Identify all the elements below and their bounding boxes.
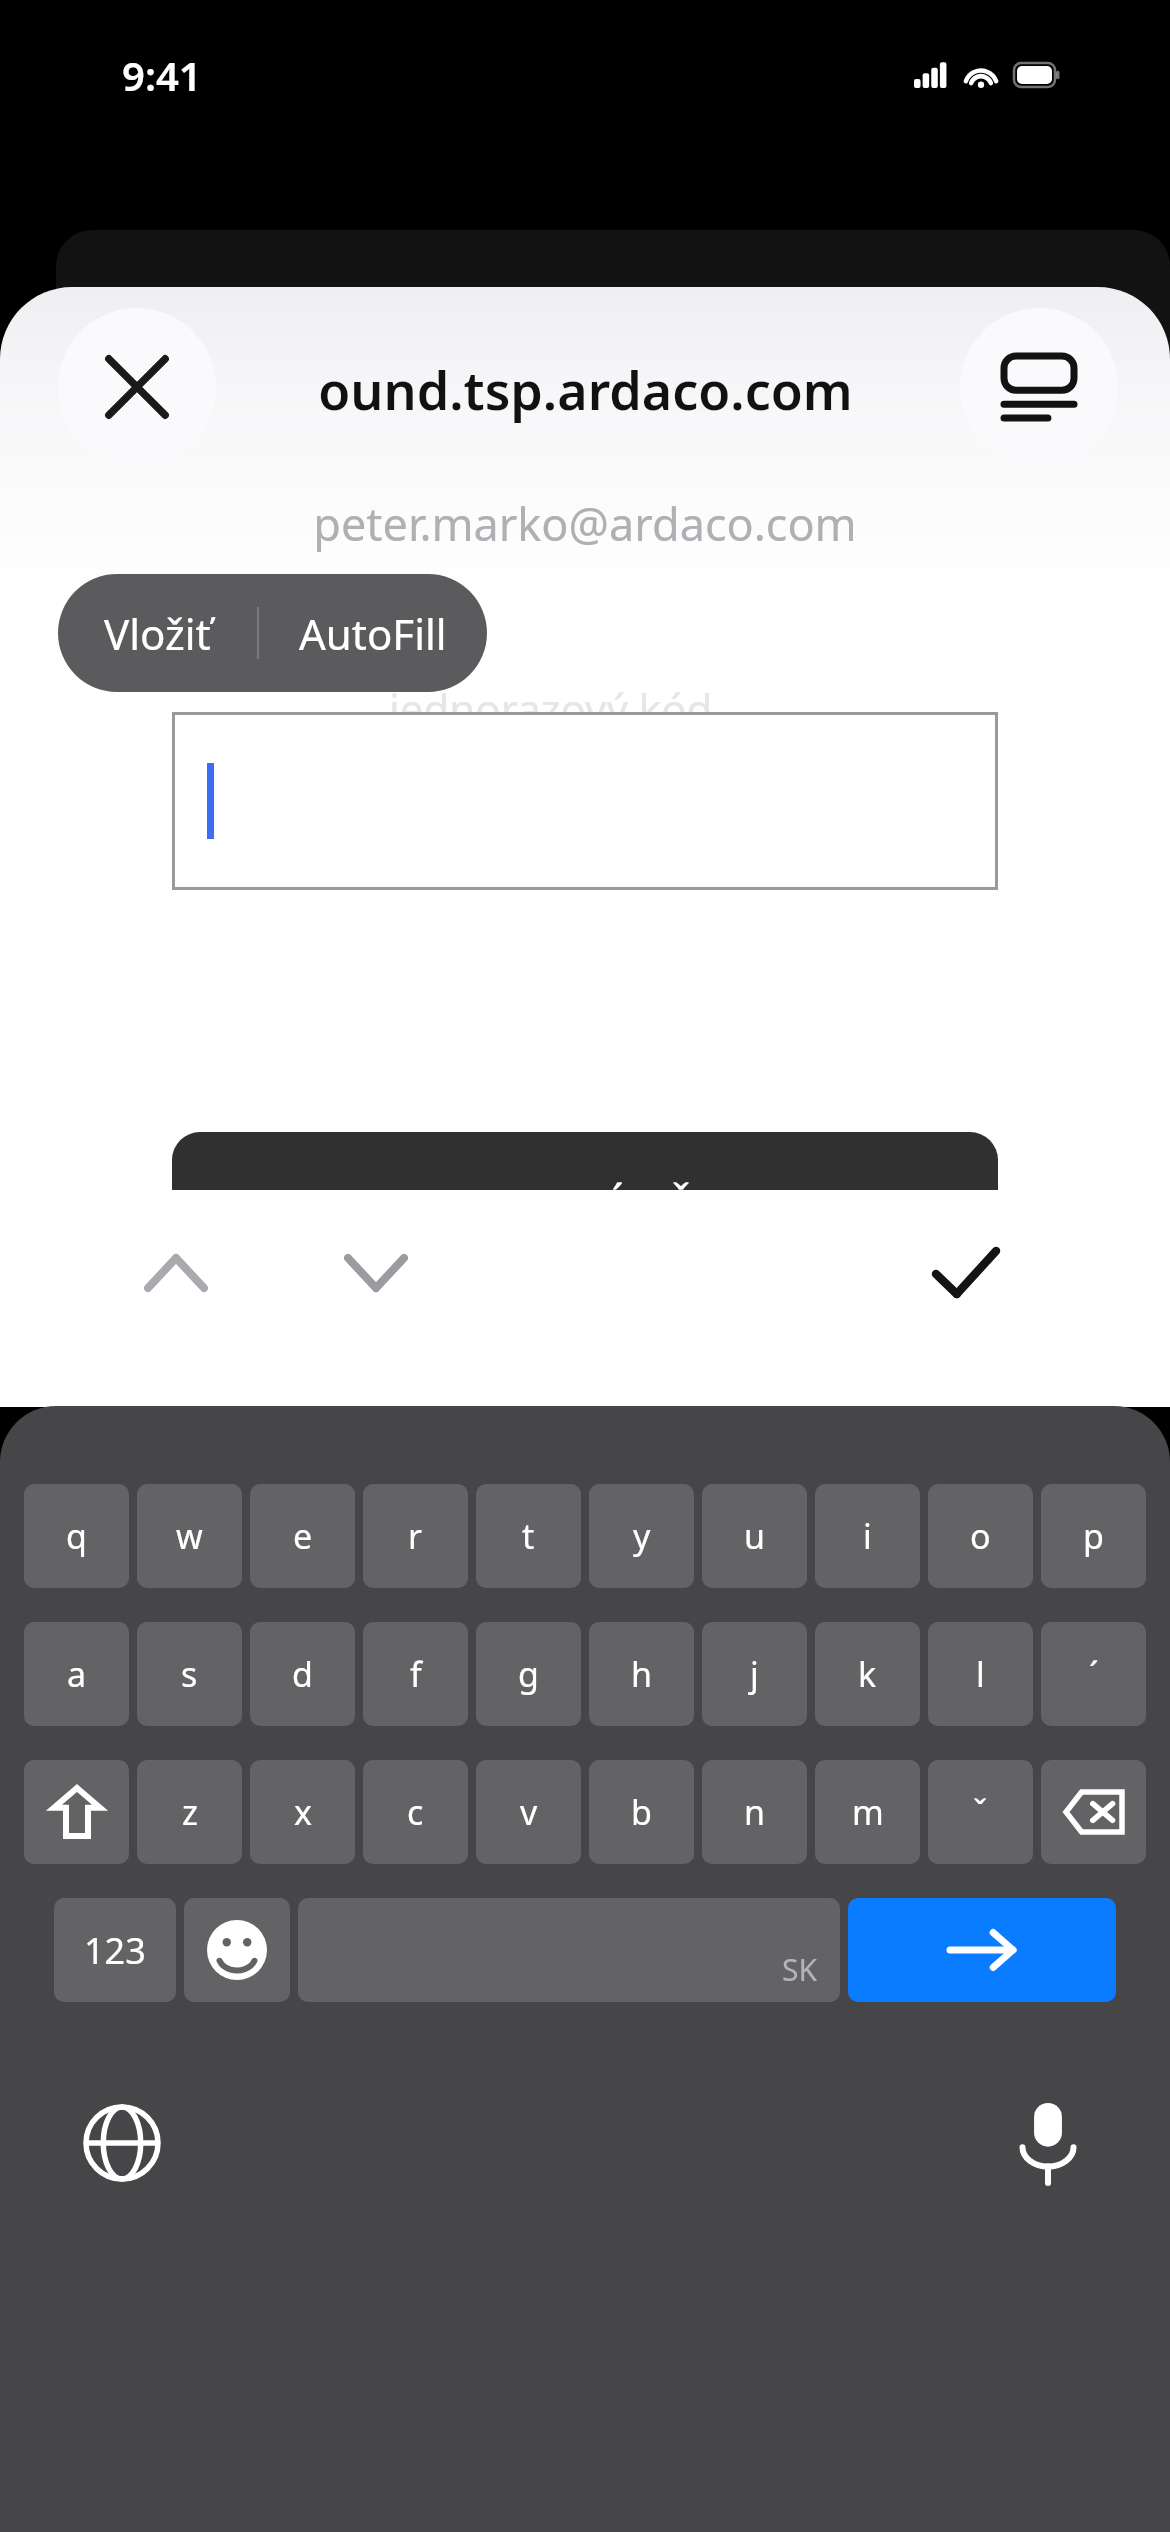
button[interactable]: e (250, 1484, 355, 1588)
button[interactable] (1041, 1760, 1146, 1864)
button[interactable]: j (702, 1622, 807, 1726)
staticText: c (407, 1789, 424, 1835)
staticText: q (66, 1513, 87, 1559)
staticText: peter.marko@ardaco.com (0, 493, 1170, 554)
button[interactable]: z (137, 1760, 242, 1864)
staticText: d (292, 1651, 313, 1697)
staticText: r (408, 1513, 423, 1559)
staticText: jednorazový kód (389, 680, 713, 737)
button[interactable]: p (1041, 1484, 1146, 1588)
button[interactable]: Change keyboard (62, 2083, 182, 2203)
staticText: a (67, 1651, 87, 1697)
staticText: p (1083, 1513, 1104, 1559)
staticText: Vložiť (104, 605, 211, 662)
staticText: h (631, 1651, 653, 1697)
button[interactable]: ´ (1041, 1622, 1146, 1726)
button[interactable]: f (363, 1622, 468, 1726)
button[interactable]: l (928, 1622, 1033, 1726)
button[interactable]: Previous field (114, 1211, 238, 1335)
button[interactable]: t (476, 1484, 581, 1588)
button[interactable]: x (250, 1760, 355, 1864)
button[interactable]: q (24, 1484, 129, 1588)
staticText: 123 (84, 1926, 146, 1975)
button[interactable] (175, 715, 995, 887)
staticText: f (410, 1651, 422, 1697)
staticText: x (294, 1789, 312, 1835)
staticText: z (182, 1789, 198, 1835)
button[interactable]: b (589, 1760, 694, 1864)
button[interactable]: Done (904, 1211, 1028, 1335)
button[interactable]: y (589, 1484, 694, 1588)
staticText: 9:41 (122, 48, 202, 102)
button[interactable]: Go (848, 1898, 1116, 2002)
button[interactable]: g (476, 1622, 581, 1726)
staticText: g (518, 1651, 539, 1697)
staticText: s (181, 1651, 198, 1697)
button[interactable]: w (137, 1484, 242, 1588)
button[interactable]: PRIHLÁSIŤ (172, 1132, 998, 1282)
staticText: m (852, 1789, 884, 1835)
staticText: n (744, 1789, 766, 1835)
button[interactable]: n (702, 1760, 807, 1864)
staticText: ´ (1089, 1651, 1099, 1697)
button[interactable]: 123 (54, 1898, 176, 2002)
button[interactable]: AutoFill (259, 574, 487, 692)
button[interactable]: c (363, 1760, 468, 1864)
staticText: l (976, 1651, 985, 1697)
button[interactable]: Close (58, 308, 216, 466)
button[interactable]: v (476, 1760, 581, 1864)
staticText: ˇ (973, 1789, 988, 1835)
button[interactable]: d (250, 1622, 355, 1726)
button[interactable]: Space (298, 1898, 840, 2002)
button[interactable] (24, 1760, 129, 1864)
button[interactable]: k (815, 1622, 920, 1726)
staticText: o (970, 1513, 991, 1559)
button[interactable]: u (702, 1484, 807, 1588)
staticText: t (522, 1513, 535, 1559)
staticText: v (520, 1789, 538, 1835)
button[interactable] (184, 1898, 290, 2002)
button[interactable]: r (363, 1484, 468, 1588)
button[interactable]: a (24, 1622, 129, 1726)
staticText: i (863, 1513, 872, 1559)
button[interactable]: Reader view (960, 308, 1118, 466)
button[interactable]: h (589, 1622, 694, 1726)
button[interactable]: m (815, 1760, 920, 1864)
staticText: ound.tsp.ardaco.com (318, 354, 853, 425)
button[interactable]: Next field (314, 1211, 438, 1335)
staticText: w (176, 1513, 203, 1559)
staticText: k (858, 1651, 877, 1697)
button[interactable]: ˇ (928, 1760, 1033, 1864)
staticText: j (750, 1651, 759, 1697)
staticText: AutoFill (299, 605, 447, 662)
staticText: SK (782, 1949, 818, 1990)
staticText: e (293, 1513, 313, 1559)
staticText: b (631, 1789, 652, 1835)
button[interactable]: Dictation (988, 2083, 1108, 2203)
button[interactable]: Vložiť (58, 574, 257, 692)
button[interactable]: o (928, 1484, 1033, 1588)
staticText: y (633, 1513, 651, 1559)
button[interactable]: i (815, 1484, 920, 1588)
button[interactable]: s (137, 1622, 242, 1726)
staticText: u (744, 1513, 766, 1559)
staticText: PRIHLÁSIŤ (477, 1177, 694, 1237)
